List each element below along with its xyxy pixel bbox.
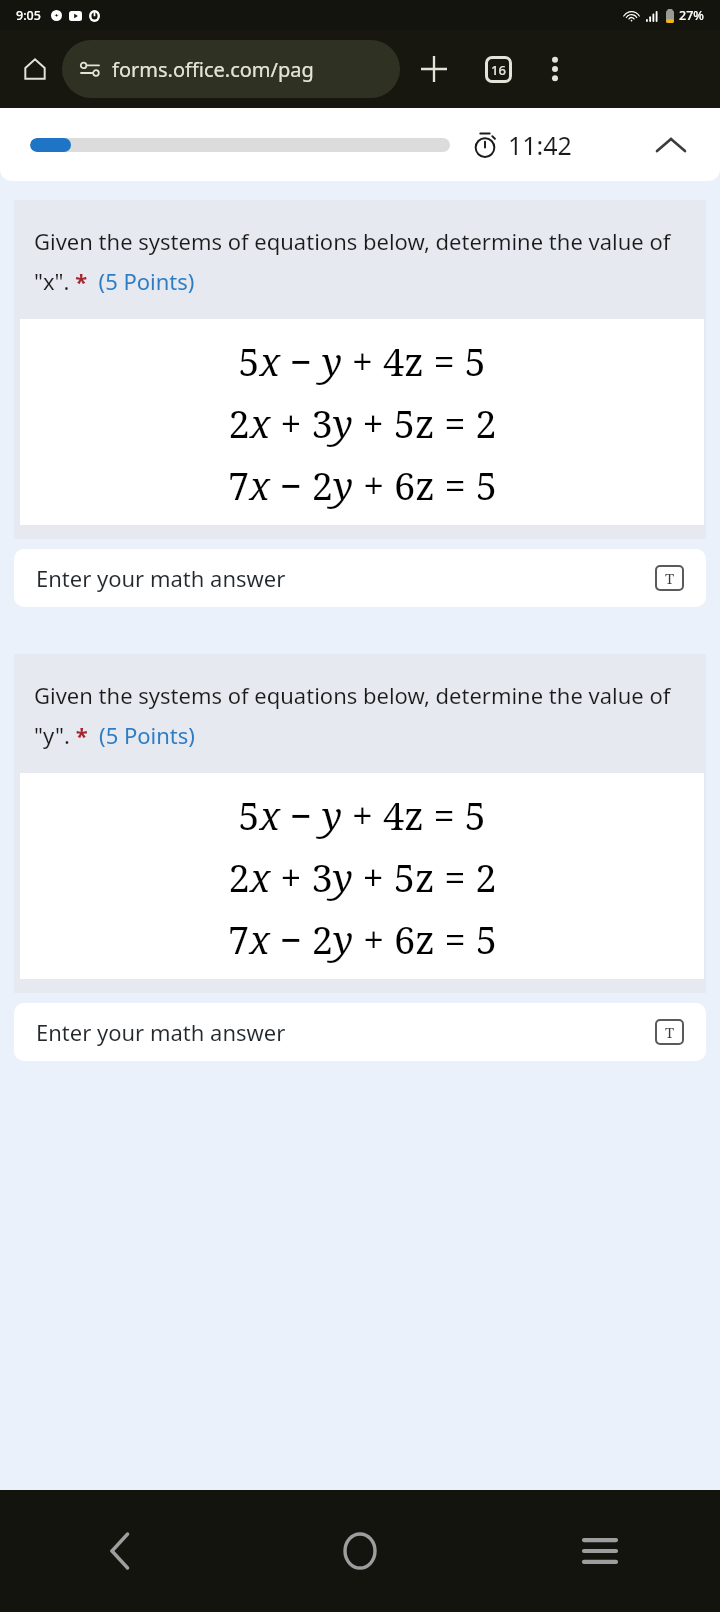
button[interactable]: Home	[240, 1490, 480, 1612]
staticText: 11:42	[508, 128, 572, 162]
staticText: 2x + 3y + 5z = 2	[228, 397, 497, 449]
staticText: Enter your math answer	[36, 563, 286, 593]
staticText: 27%	[679, 7, 704, 24]
staticText: T	[665, 568, 675, 588]
staticText: 2x + 3y + 5z = 2	[228, 851, 497, 903]
staticText: 5x − y + 4z = 5	[238, 789, 486, 841]
staticText: 16	[491, 61, 506, 79]
staticText: T	[665, 1022, 675, 1042]
button[interactable]: Recent apps	[480, 1490, 720, 1612]
staticText: 5x − y + 4z = 5	[238, 335, 486, 387]
button[interactable]: Collapse	[648, 122, 694, 168]
button[interactable]: Given the systems of equations below, de…	[14, 200, 706, 539]
button[interactable]: Back	[0, 1490, 240, 1612]
staticText: 9:05	[16, 7, 41, 24]
button[interactable]: Tabs, 16 open	[474, 45, 522, 93]
staticText: 7x − 2y + 6z = 5	[228, 913, 497, 965]
staticText: 7x − 2y + 6z = 5	[228, 459, 497, 511]
staticText: Enter your math answer	[36, 1017, 286, 1047]
button[interactable]: Enter your math answer	[14, 549, 706, 607]
button[interactable]: forms.office.com/pag	[62, 40, 400, 98]
button[interactable]: Math input keyboard	[654, 563, 684, 593]
button[interactable]: Enter your math answer	[14, 1003, 706, 1061]
staticText: Given the systems of equations below, de…	[34, 226, 694, 297]
button[interactable]: Home	[12, 46, 58, 92]
button[interactable]: New tab	[410, 45, 458, 93]
button[interactable]: Math input keyboard	[654, 1017, 684, 1047]
staticText: Given the systems of equations below, de…	[34, 680, 694, 751]
button[interactable]: More options	[532, 46, 578, 92]
button[interactable]: Given the systems of equations below, de…	[14, 654, 706, 993]
staticText: forms.office.com/pag	[112, 56, 314, 83]
